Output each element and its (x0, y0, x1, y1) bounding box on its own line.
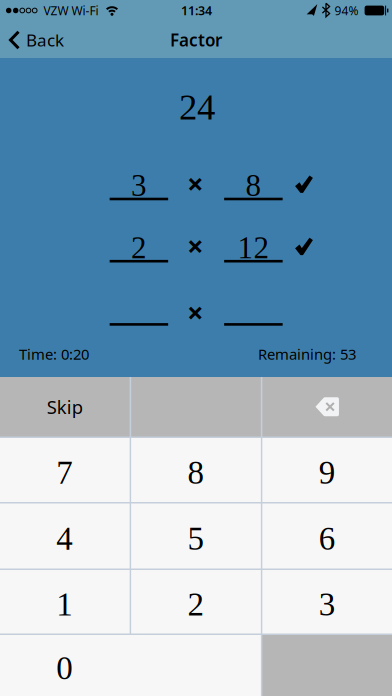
staticText: Back (26, 28, 64, 52)
staticText: 4 (56, 520, 73, 557)
staticText: 0 (56, 650, 73, 686)
button[interactable]: 4 (0, 503, 130, 568)
staticText: 12 (237, 230, 269, 265)
staticText: 3 (131, 168, 147, 203)
staticText: 1 (56, 586, 73, 623)
staticText: × (187, 226, 204, 265)
button[interactable]: 9 (262, 438, 392, 502)
button[interactable]: 7 (0, 438, 130, 502)
staticText: 8 (245, 168, 261, 203)
staticText: 94% (334, 2, 358, 19)
button[interactable]: 0 (0, 635, 261, 696)
staticText: Factor (170, 28, 222, 52)
button[interactable]: 5 (131, 503, 261, 568)
staticText: 24 (179, 87, 215, 127)
staticText: Skip (47, 394, 83, 419)
staticText: 7 (56, 454, 73, 491)
staticText: VZW Wi-Fi (43, 2, 98, 19)
staticText: 8 (187, 454, 204, 491)
button[interactable]: 3 (262, 570, 392, 633)
staticText: 5 (187, 520, 204, 557)
staticText: 11:34 (181, 2, 212, 19)
button[interactable]: 1 (0, 570, 130, 633)
button[interactable]: Back (9, 28, 64, 52)
button[interactable]: Skip (0, 377, 130, 436)
button[interactable]: 8 (131, 438, 261, 502)
button[interactable]: Delete (262, 377, 392, 436)
button[interactable]: 2 (131, 570, 261, 633)
staticText: Time: 0:20 (19, 344, 89, 364)
staticText: 3 (319, 586, 336, 623)
staticText: × (187, 163, 204, 203)
staticText: 6 (319, 520, 336, 557)
staticText: 2 (131, 230, 147, 265)
button[interactable]: 6 (262, 503, 392, 568)
staticText: 9 (319, 454, 336, 491)
staticText: Remaining: 53 (258, 344, 356, 364)
staticText: × (187, 292, 204, 332)
staticText: 2 (187, 586, 204, 623)
